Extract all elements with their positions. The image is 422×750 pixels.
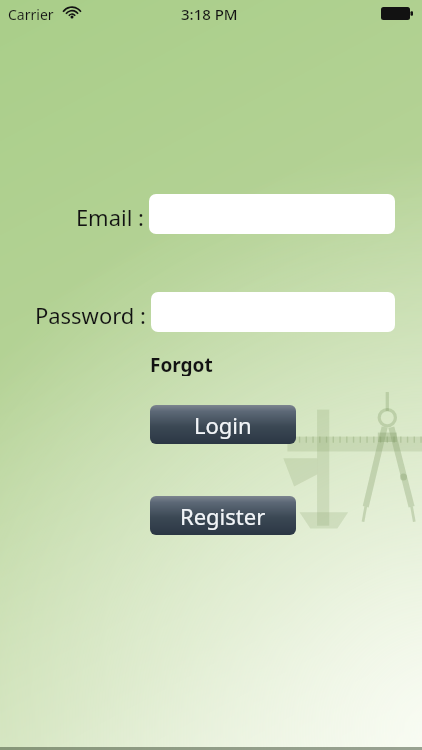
staticText: Forgot Password? (150, 352, 306, 376)
staticText: Carrier (8, 5, 54, 24)
button[interactable]: Email input (149, 194, 395, 234)
staticText: Login (194, 410, 252, 440)
button[interactable]: Login (150, 405, 296, 444)
button[interactable]: Register (150, 496, 296, 535)
staticText: Register (180, 501, 266, 531)
button[interactable]: Password input (151, 292, 395, 332)
button[interactable]: Forgot Password? (150, 352, 306, 376)
staticText: Password : (0, 300, 146, 330)
staticText: 3:18 PM (181, 4, 238, 24)
staticText: Email : (0, 202, 144, 232)
